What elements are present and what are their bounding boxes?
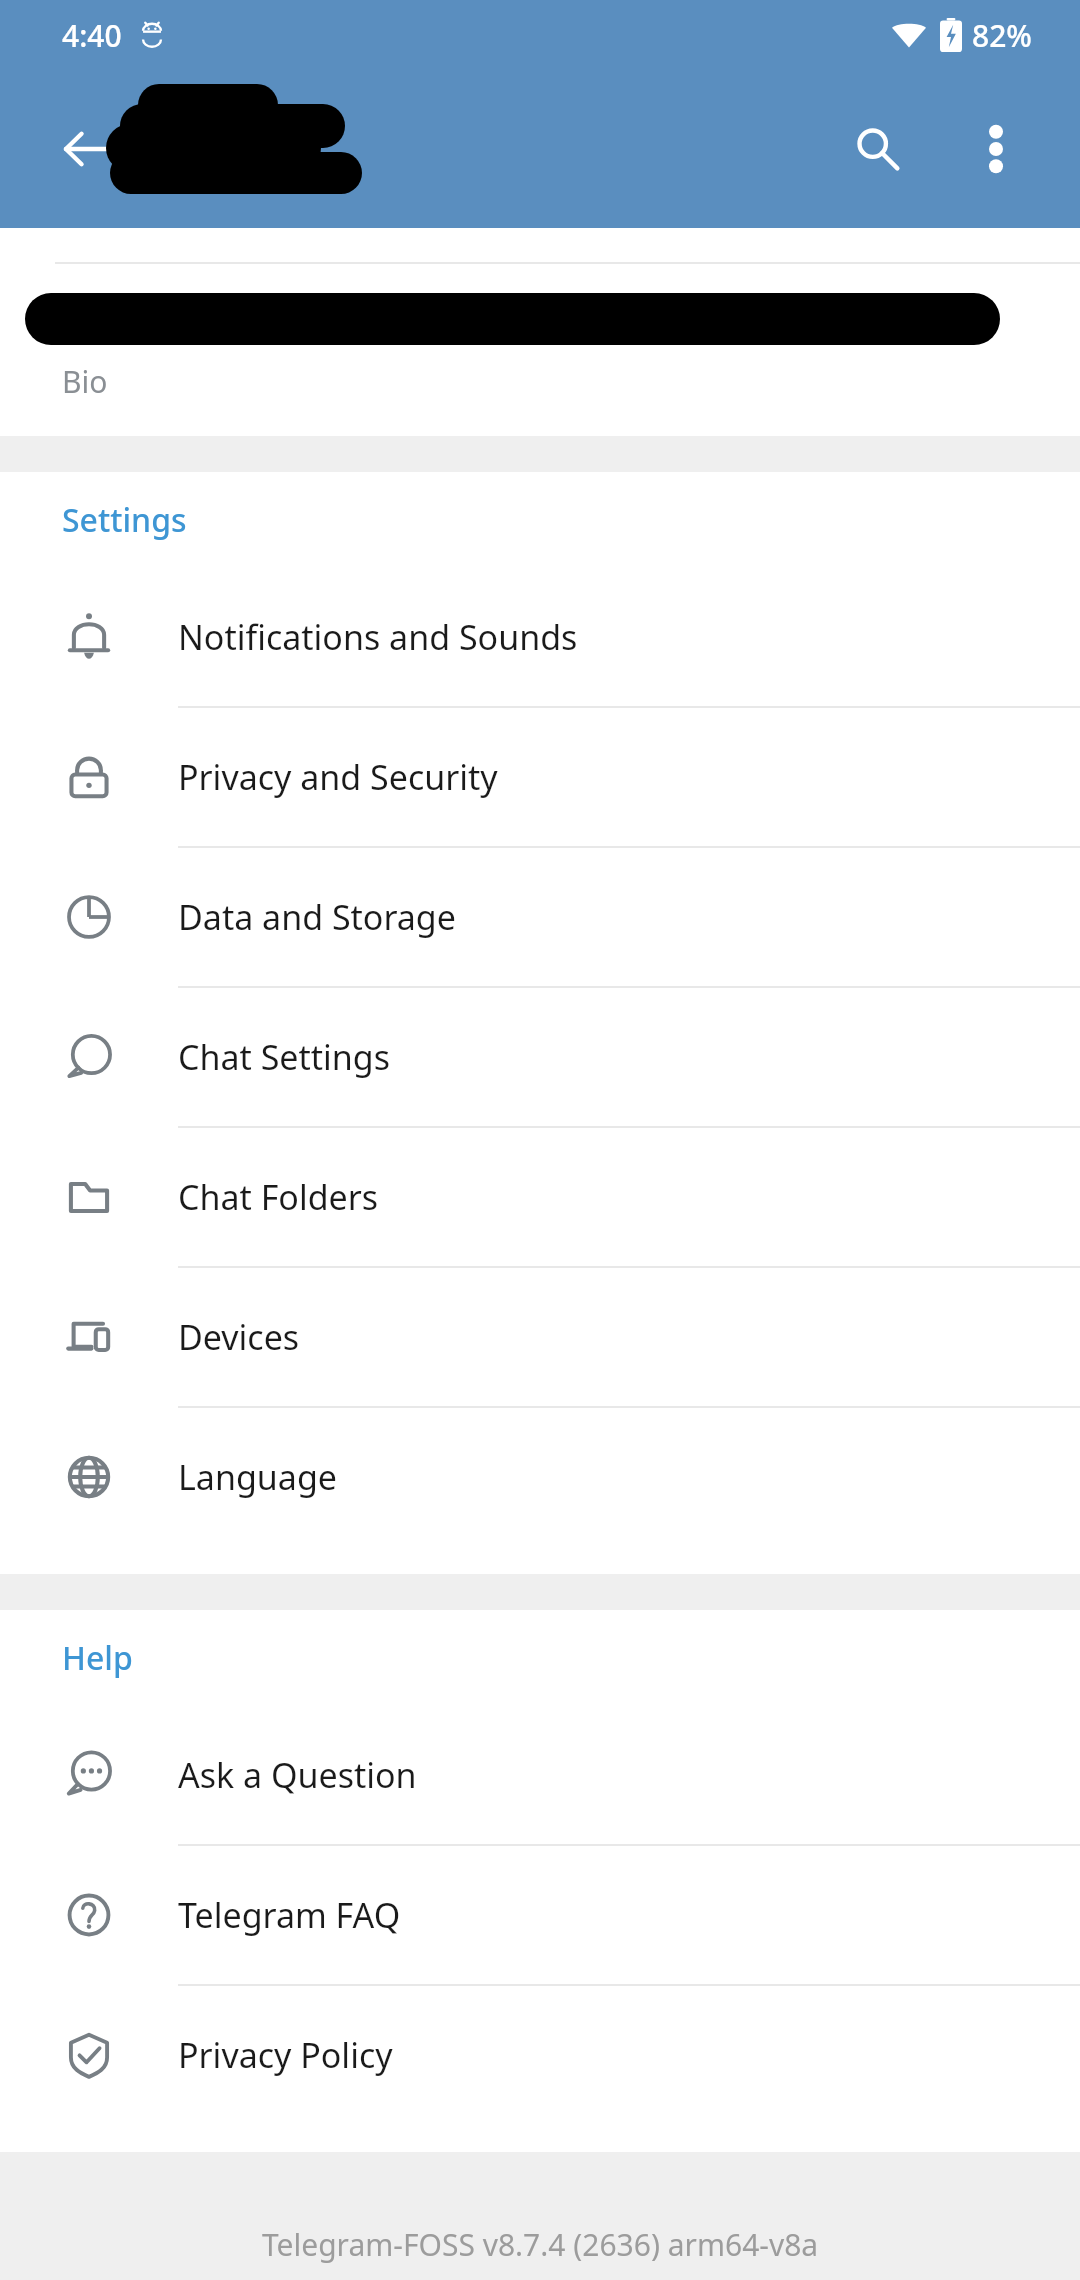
staticText: Notifications and Sounds bbox=[178, 614, 578, 660]
staticText: Help bbox=[62, 1636, 133, 1680]
button[interactable]: Privacy and Security bbox=[0, 708, 1080, 846]
staticText: Privacy Policy bbox=[178, 2032, 393, 2078]
button[interactable]: More options bbox=[948, 101, 1044, 197]
staticText: Language bbox=[178, 1454, 337, 1500]
button[interactable]: Back bbox=[40, 101, 136, 197]
button[interactable]: Chat Settings bbox=[0, 988, 1080, 1126]
button[interactable]: Ask a Question bbox=[0, 1706, 1080, 1844]
button[interactable]: Notifications and Sounds bbox=[0, 568, 1080, 706]
staticText: Settings bbox=[62, 498, 187, 542]
staticText: Ask a Question bbox=[178, 1752, 417, 1798]
staticText: Devices bbox=[178, 1314, 300, 1360]
staticText: Privacy and Security bbox=[178, 754, 498, 800]
staticText: Telegram FAQ bbox=[178, 1892, 401, 1938]
button[interactable]: Language bbox=[0, 1408, 1080, 1546]
staticText: Chat Settings bbox=[178, 1034, 391, 1080]
staticText: Bio bbox=[62, 361, 108, 402]
staticText: Data and Storage bbox=[178, 894, 456, 940]
staticText: Chat Folders bbox=[178, 1174, 379, 1220]
staticText: 82% bbox=[972, 15, 1032, 56]
button[interactable]: Search bbox=[830, 101, 926, 197]
button[interactable]: Devices bbox=[0, 1268, 1080, 1406]
button[interactable]: Data and Storage bbox=[0, 848, 1080, 986]
staticText: Telegram-FOSS v8.7.4 (2636) arm64-v8a bbox=[262, 2224, 819, 2265]
button[interactable]: Telegram FAQ bbox=[0, 1846, 1080, 1984]
button[interactable]: Privacy Policy bbox=[0, 1986, 1080, 2124]
button[interactable]: Chat Folders bbox=[0, 1128, 1080, 1266]
staticText: 4:40 bbox=[62, 15, 122, 56]
